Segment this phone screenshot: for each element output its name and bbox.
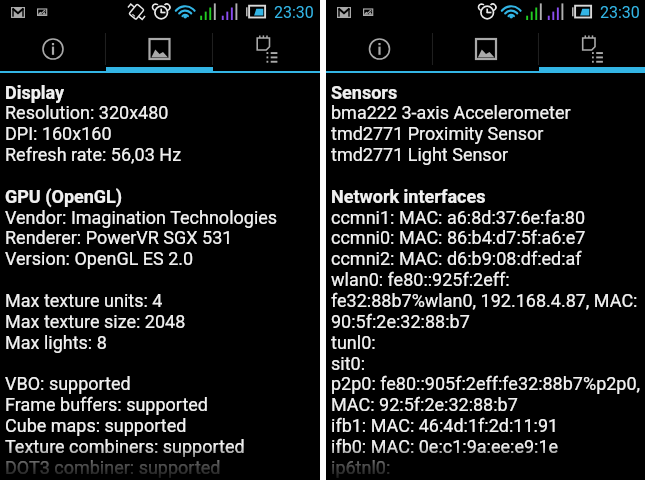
- staticText: DOT3 combiner: supported: [5, 457, 221, 478]
- staticText: ccmni1: MAC: a6:8d:37:6e:fa:80: [331, 207, 586, 228]
- staticText: Max texture units: 4: [5, 290, 163, 311]
- staticText: GPU (OpenGL): [5, 186, 123, 207]
- staticText: ccmni2: MAC: d6:b9:08:df:ed:af: [331, 248, 582, 269]
- staticText: Vendor: Imagination Technologies: [5, 207, 278, 228]
- staticText: Sensors: [331, 82, 398, 103]
- staticText: Cube maps: supported: [5, 415, 187, 436]
- staticText: Refresh rate: 56,03 Hz: [5, 144, 182, 165]
- staticText: 90:5f:2e:32:88:b7: [331, 311, 470, 332]
- staticText: Texture combiners: supported: [5, 436, 245, 457]
- staticText: Max lights: 8: [5, 332, 107, 353]
- staticText: ip6tnl0:: [331, 457, 391, 478]
- staticText: Resolution: 320x480: [5, 102, 169, 123]
- staticText: tmd2771 Proximity Sensor: [331, 123, 544, 144]
- staticText: Renderer: PowerVR SGX 531: [5, 227, 233, 248]
- staticText: sit0:: [331, 353, 366, 374]
- staticText: ccmni0: MAC: 86:b4:d7:5f:a6:e7: [331, 227, 586, 248]
- staticText: Frame buffers: supported: [5, 394, 208, 415]
- staticText: fe32:88b7%wlan0, 192.168.4.87, MAC:: [331, 290, 638, 311]
- staticText: p2p0: fe80::905f:2eff:fe32:88b7%p2p0,: [331, 373, 641, 394]
- staticText: DPI: 160x160: [5, 123, 112, 144]
- staticText: MAC: 92:5f:2e:32:88:b7: [331, 394, 518, 415]
- staticText: ifb0: MAC: 0e:c1:9a:ee:e9:1e: [331, 436, 559, 457]
- staticText: 23:30: [600, 3, 640, 22]
- staticText: wlan0: fe80::925f:2eff:: [331, 269, 510, 290]
- staticText: tmd2771 Light Sensor: [331, 144, 509, 165]
- button[interactable]: Info tab: [326, 24, 433, 73]
- staticText: tunl0:: [331, 332, 376, 353]
- button[interactable]: Info tab: [0, 24, 106, 73]
- staticText: bma222 3-axis Accelerometer: [331, 102, 571, 123]
- staticText: ifb1: MAC: 46:4d:1f:2d:11:91: [331, 415, 559, 436]
- button[interactable]: Display tab: [433, 24, 539, 73]
- staticText: Network interfaces: [331, 186, 486, 207]
- staticText: Version: OpenGL ES 2.0: [5, 248, 194, 269]
- button[interactable]: Hardware tab: [213, 24, 320, 73]
- staticText: 23:30: [274, 3, 314, 22]
- staticText: VBO: supported: [5, 373, 131, 394]
- staticText: Max texture size: 2048: [5, 311, 186, 332]
- button[interactable]: Hardware tab: [539, 24, 645, 73]
- button[interactable]: Display tab: [106, 24, 213, 73]
- staticText: Display: [5, 82, 65, 103]
